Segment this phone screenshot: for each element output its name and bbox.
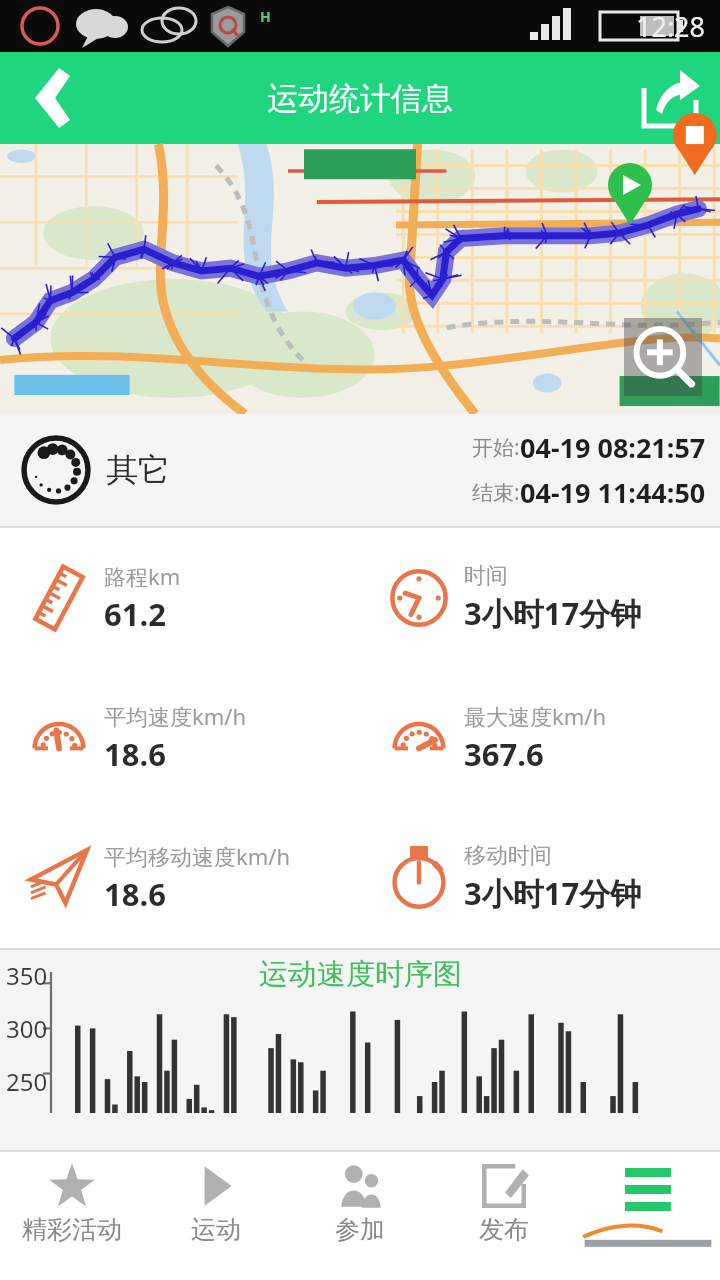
staticText: 精彩活动 — [22, 1214, 122, 1245]
staticText: 参加 — [335, 1214, 385, 1245]
staticText: 3小时17分钟 — [464, 592, 642, 634]
staticText: 250 — [6, 1065, 48, 1098]
button[interactable]: 发布 — [432, 1152, 576, 1250]
staticText: 其它 — [106, 450, 170, 490]
staticText: 04-19 11:44:50 — [520, 474, 706, 511]
staticText: 运动速度时序图 — [259, 956, 462, 993]
staticText: 发布 — [479, 1214, 529, 1245]
staticText: 367.6 — [464, 733, 544, 775]
button[interactable]: 路程km — [0, 528, 360, 668]
button[interactable]: 参加 — [288, 1152, 432, 1250]
staticText: 移动时间 — [464, 842, 552, 870]
staticText: 300 — [6, 1012, 48, 1045]
staticText: 3小时17分钟 — [464, 872, 642, 914]
staticText: 平均移动速度km/h — [104, 841, 291, 871]
button[interactable]: Zoom in — [0, 144, 720, 414]
button[interactable]: Share — [628, 52, 720, 144]
button[interactable]: Menu — [576, 1152, 720, 1250]
button[interactable]: 平均移动速度km/h — [0, 808, 360, 948]
button[interactable]: 时间 — [360, 528, 720, 668]
staticText: 最大速度km/h — [464, 701, 607, 731]
staticText: 18.6 — [104, 873, 166, 915]
staticText: 结束: — [472, 478, 520, 507]
staticText: 18.6 — [104, 733, 166, 775]
staticText: 路程km — [104, 561, 181, 591]
button[interactable]: 运动 — [144, 1152, 288, 1250]
button[interactable]: Back — [0, 52, 92, 144]
button[interactable]: 最大速度km/h — [360, 668, 720, 808]
staticText: 350 — [6, 959, 48, 992]
staticText: H — [260, 7, 271, 26]
staticText: 运动 — [191, 1214, 241, 1245]
staticText: 平均速度km/h — [104, 701, 247, 731]
button[interactable]: 移动时间 — [360, 808, 720, 948]
staticText: 12:28 — [636, 8, 706, 45]
staticText: 61.2 — [104, 593, 166, 635]
button[interactable]: Zoom in — [624, 318, 702, 396]
button[interactable]: 平均速度km/h — [0, 668, 360, 808]
staticText: 开始: — [472, 433, 520, 462]
button[interactable]: 其它 — [0, 414, 720, 526]
button[interactable]: 精彩活动 — [0, 1152, 144, 1250]
staticText: 运动统计信息 — [267, 79, 453, 118]
staticText: 时间 — [464, 562, 508, 590]
staticText: 04-19 08:21:57 — [520, 429, 706, 466]
